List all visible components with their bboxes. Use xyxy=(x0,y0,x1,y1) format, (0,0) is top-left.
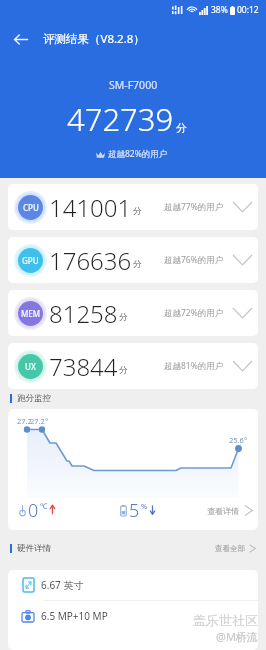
staticText: 6.67 英寸 xyxy=(41,578,84,592)
staticText: 6.5 MP+10 MP xyxy=(41,609,108,623)
staticText: 超越76%的用户 xyxy=(164,254,224,266)
staticText: 硬件详情 xyxy=(17,543,51,554)
staticText: 超越81%的用户 xyxy=(164,360,224,372)
staticText: 超越77%的用户 xyxy=(164,201,224,213)
staticText: 跑分监控 xyxy=(17,393,51,404)
staticText: 176636 xyxy=(49,244,132,277)
staticText: 27.2° xyxy=(30,416,49,426)
staticText: 472739 xyxy=(67,98,174,140)
button[interactable]: 查看全部 xyxy=(215,543,256,554)
staticText: 分 xyxy=(119,365,128,376)
staticText: 38% xyxy=(211,4,228,16)
staticText: 盖乐世社区 xyxy=(193,612,258,628)
button[interactable]: 查看详情 xyxy=(207,503,253,518)
staticText: 5 xyxy=(129,498,140,523)
staticText: 25.6° xyxy=(229,435,248,445)
staticText: 27.2 xyxy=(17,416,32,426)
button[interactable]: 6.67 英寸 xyxy=(19,570,258,600)
staticText: 81258 xyxy=(49,297,118,330)
staticText: 分 xyxy=(133,259,142,270)
staticText: 查看详情 xyxy=(207,506,239,516)
button[interactable]: UX xyxy=(8,343,258,389)
staticText: 超越82%的用户 xyxy=(108,148,168,160)
staticText: 00:12 xyxy=(237,4,259,16)
staticText: MEM xyxy=(21,308,41,319)
staticText: 0 xyxy=(28,498,39,523)
staticText: 分 xyxy=(176,121,187,135)
staticText: 分 xyxy=(119,312,128,323)
staticText: UX xyxy=(25,361,36,372)
staticText: ℃ xyxy=(40,501,48,511)
button[interactable]: GPU xyxy=(8,237,258,283)
staticText: CPU xyxy=(23,202,39,213)
staticText: @M桥流 xyxy=(216,629,258,644)
staticText: 73844 xyxy=(49,350,118,383)
staticText: % xyxy=(141,501,148,511)
staticText: 超越72%的用户 xyxy=(164,307,224,319)
staticText: 分 xyxy=(133,206,142,217)
staticText: SM-F7000 xyxy=(109,78,158,92)
button[interactable]: 6.5 MP+10 MP xyxy=(19,601,258,631)
staticText: 141001 xyxy=(49,191,132,224)
button[interactable]: Back xyxy=(0,23,40,55)
staticText: 评测结果（V8.2.8） xyxy=(43,31,145,47)
button[interactable]: MEM xyxy=(8,290,258,336)
staticText: GPU xyxy=(22,255,39,266)
staticText: 查看全部 xyxy=(215,544,245,553)
button[interactable]: CPU xyxy=(8,184,258,230)
